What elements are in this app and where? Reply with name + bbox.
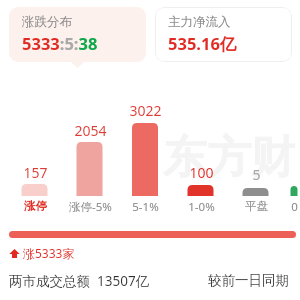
staticText: 5333:5:38	[22, 32, 98, 54]
staticText: 0	[291, 199, 298, 215]
staticText: 涨5333家	[23, 245, 75, 261]
staticText: 东方财	[163, 130, 295, 185]
staticText: 涨停-5%	[69, 199, 112, 215]
staticText: 较前一日同期	[208, 272, 289, 289]
staticText: 主力净流入	[168, 14, 231, 30]
staticText: 涨跌分布	[22, 14, 72, 30]
staticText: 3022	[129, 101, 162, 120]
button[interactable]: 涨5333家	[9, 245, 75, 261]
staticText: 5	[252, 165, 261, 184]
staticText: 5-1%	[132, 199, 159, 215]
staticText: 1-0%	[188, 199, 215, 215]
staticText: 两市成交总额 13507亿	[9, 272, 150, 290]
staticText: 535.16亿	[168, 32, 237, 55]
staticText: 2054	[74, 121, 107, 140]
staticText: 平盘	[245, 199, 268, 213]
staticText: 100	[189, 163, 214, 182]
button[interactable]: 主力净流入	[155, 7, 292, 62]
staticText: 涨停	[24, 199, 47, 213]
staticText: 157	[23, 163, 48, 182]
button[interactable]: 涨跌分布	[9, 7, 146, 62]
